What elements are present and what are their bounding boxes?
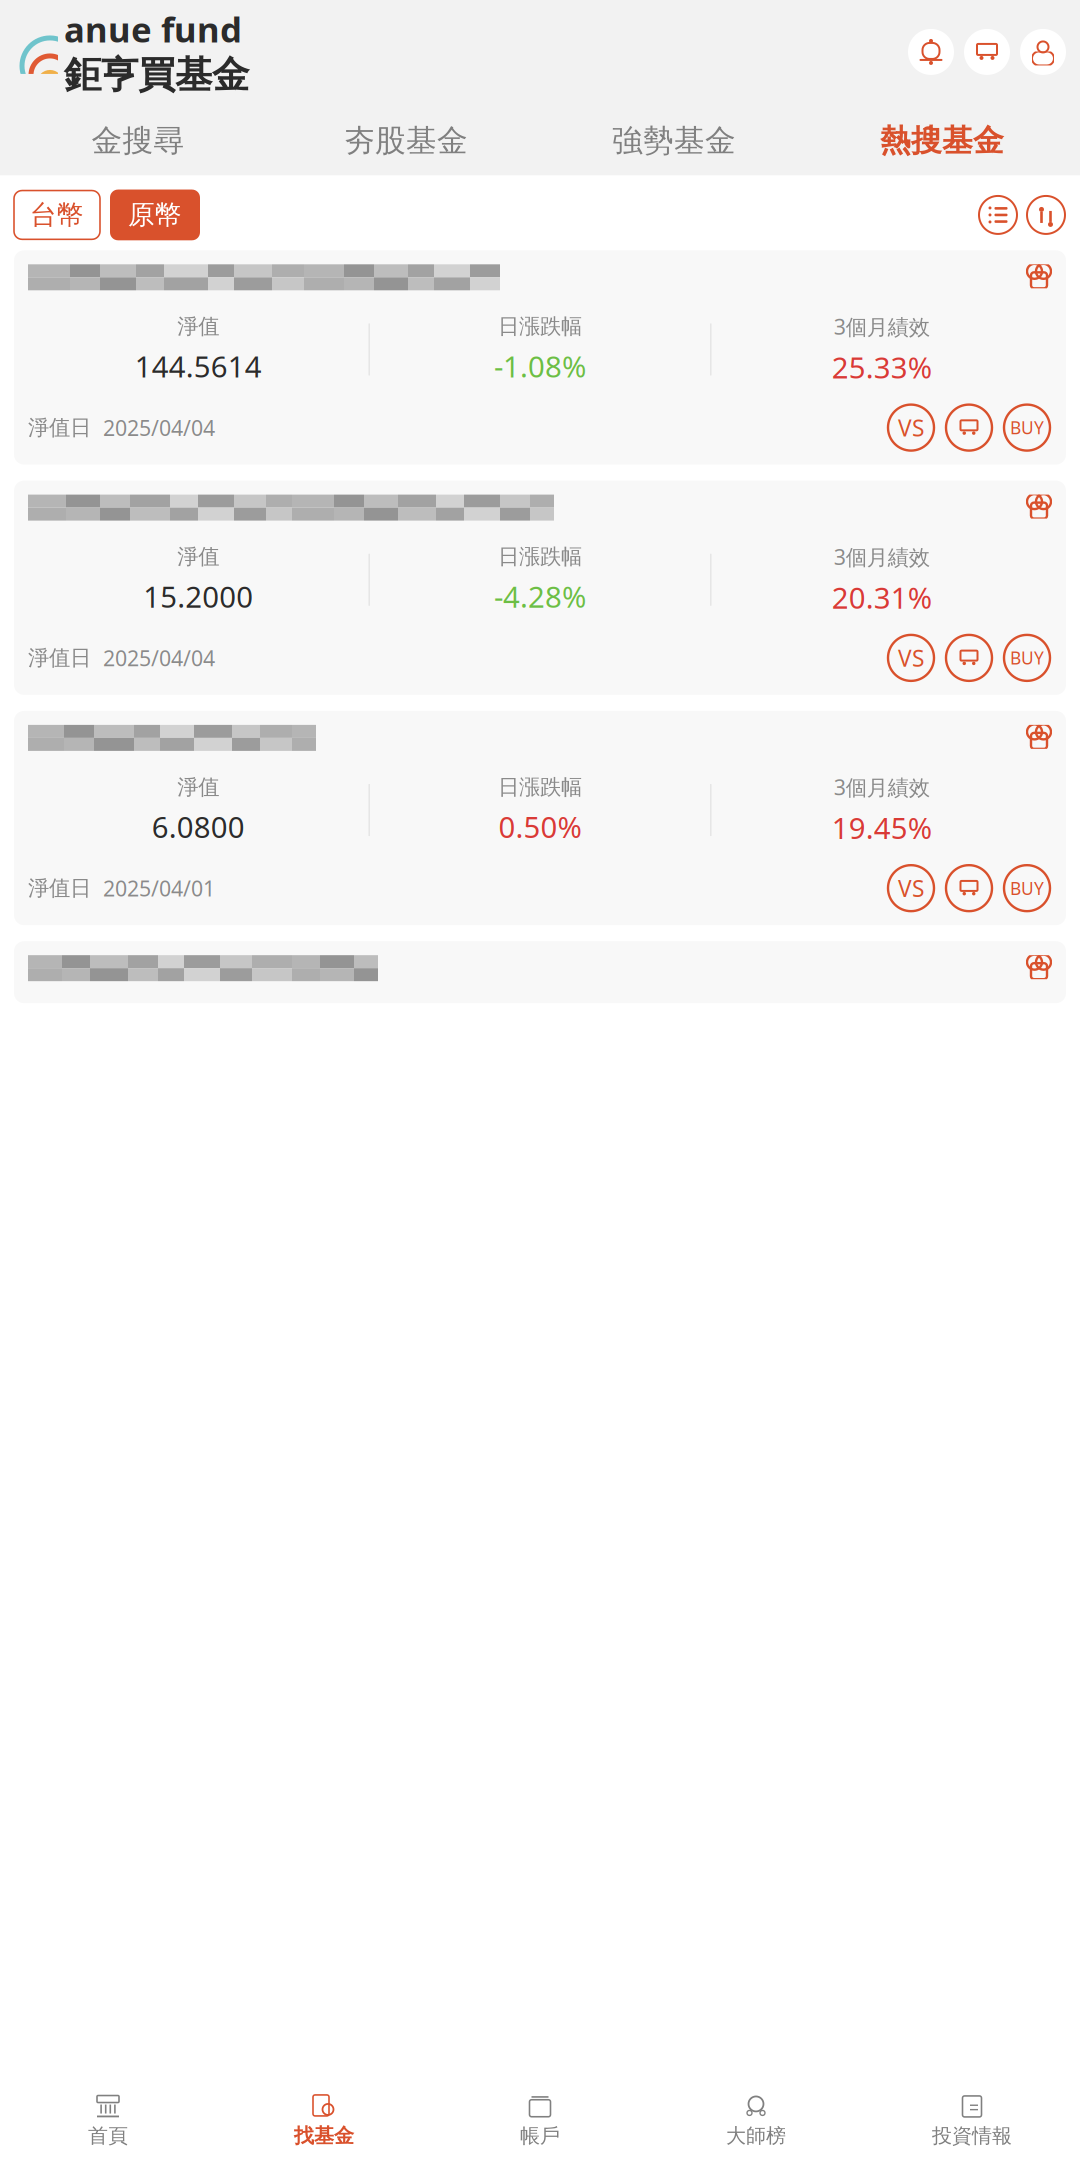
staticText: 淨值日 xyxy=(28,414,91,441)
staticText: 3個月績效 xyxy=(834,312,930,341)
button[interactable]: Compare xyxy=(886,633,936,683)
staticText: 鉅亨買基金 xyxy=(64,52,249,98)
button[interactable]: Favourite xyxy=(1026,495,1052,519)
staticText: 3個月績效 xyxy=(834,543,930,571)
button[interactable]: Favourite xyxy=(1026,725,1052,749)
staticText: 淨值 xyxy=(177,774,219,800)
button[interactable]: 夯股基金 xyxy=(272,112,540,170)
staticText: 20.31% xyxy=(832,578,932,617)
staticText: 144.5614 xyxy=(135,347,262,386)
button[interactable]: Account xyxy=(1020,29,1066,75)
staticText: VS xyxy=(898,873,924,903)
staticText: 15.2000 xyxy=(143,577,253,616)
staticText: -1.08% xyxy=(494,347,586,386)
button[interactable]: Buy xyxy=(1002,863,1052,913)
button[interactable]: Sort xyxy=(1026,195,1066,235)
staticText: 夯股基金 xyxy=(344,122,468,160)
staticText: BUY xyxy=(1010,877,1044,900)
button[interactable]: Buy xyxy=(1002,403,1052,453)
staticText: 19.45% xyxy=(832,808,932,847)
button[interactable]: 首頁 xyxy=(0,2088,216,2154)
button[interactable]: 金搜尋 xyxy=(4,112,272,170)
button[interactable]: Buy xyxy=(1002,633,1052,683)
staticText: 6.0800 xyxy=(152,807,245,846)
staticText: VS xyxy=(898,643,924,673)
staticText: 淨值日 xyxy=(28,875,91,901)
button[interactable]: Compare xyxy=(886,403,936,453)
button[interactable]: 投資情報 xyxy=(864,2088,1080,2154)
button[interactable]: 大師榜 xyxy=(648,2088,864,2154)
button[interactable]: Add to cart xyxy=(944,403,994,453)
staticText: 首頁 xyxy=(88,2123,128,2148)
button[interactable]: 原幣 xyxy=(110,190,200,240)
staticText: 日漲跌幅 xyxy=(498,313,582,340)
staticText: 帳戶 xyxy=(520,2123,560,2148)
staticText: 日漲跌幅 xyxy=(498,774,582,800)
button[interactable]: Add to cart xyxy=(944,633,994,683)
staticText: 3個月績效 xyxy=(834,773,930,801)
staticText: 2025/04/04 xyxy=(91,644,215,672)
button[interactable]: 台幣 xyxy=(14,191,100,239)
staticText: 2025/04/01 xyxy=(91,874,215,902)
staticText: 2025/04/04 xyxy=(91,413,215,442)
staticText: anue fund xyxy=(64,6,242,52)
staticText: 強勢基金 xyxy=(612,122,736,160)
button[interactable]: Favourite xyxy=(1026,264,1052,288)
button[interactable]: 找基金 xyxy=(216,2088,432,2154)
button[interactable]: 熱搜基金 xyxy=(808,112,1076,170)
button[interactable]: Add to cart xyxy=(944,863,994,913)
staticText: 淨值 xyxy=(177,544,219,570)
button[interactable]: List options xyxy=(978,195,1018,235)
staticText: 日漲跌幅 xyxy=(498,544,582,570)
staticText: 熱搜基金 xyxy=(880,122,1004,160)
staticText: VS xyxy=(898,412,924,443)
staticText: -4.28% xyxy=(494,577,586,616)
button[interactable]: Favourite xyxy=(1026,955,1052,979)
staticText: 淨值 xyxy=(177,313,219,340)
staticText: 大師榜 xyxy=(726,2123,786,2148)
staticText: BUY xyxy=(1010,646,1044,669)
staticText: 0.50% xyxy=(498,807,581,846)
staticText: BUY xyxy=(1010,416,1044,439)
staticText: 金搜尋 xyxy=(91,122,184,160)
staticText: 淨值日 xyxy=(28,645,91,671)
button[interactable]: 帳戶 xyxy=(432,2088,648,2154)
staticText: 25.33% xyxy=(832,348,932,387)
staticText: 原幣 xyxy=(128,199,182,231)
staticText: 投資情報 xyxy=(932,2123,1012,2148)
staticText: 台幣 xyxy=(30,199,84,231)
staticText: 找基金 xyxy=(294,2123,354,2148)
button[interactable]: Cart xyxy=(964,29,1010,75)
button[interactable]: Compare xyxy=(886,863,936,913)
button[interactable]: Notifications xyxy=(908,29,954,75)
button[interactable]: 強勢基金 xyxy=(540,112,808,170)
